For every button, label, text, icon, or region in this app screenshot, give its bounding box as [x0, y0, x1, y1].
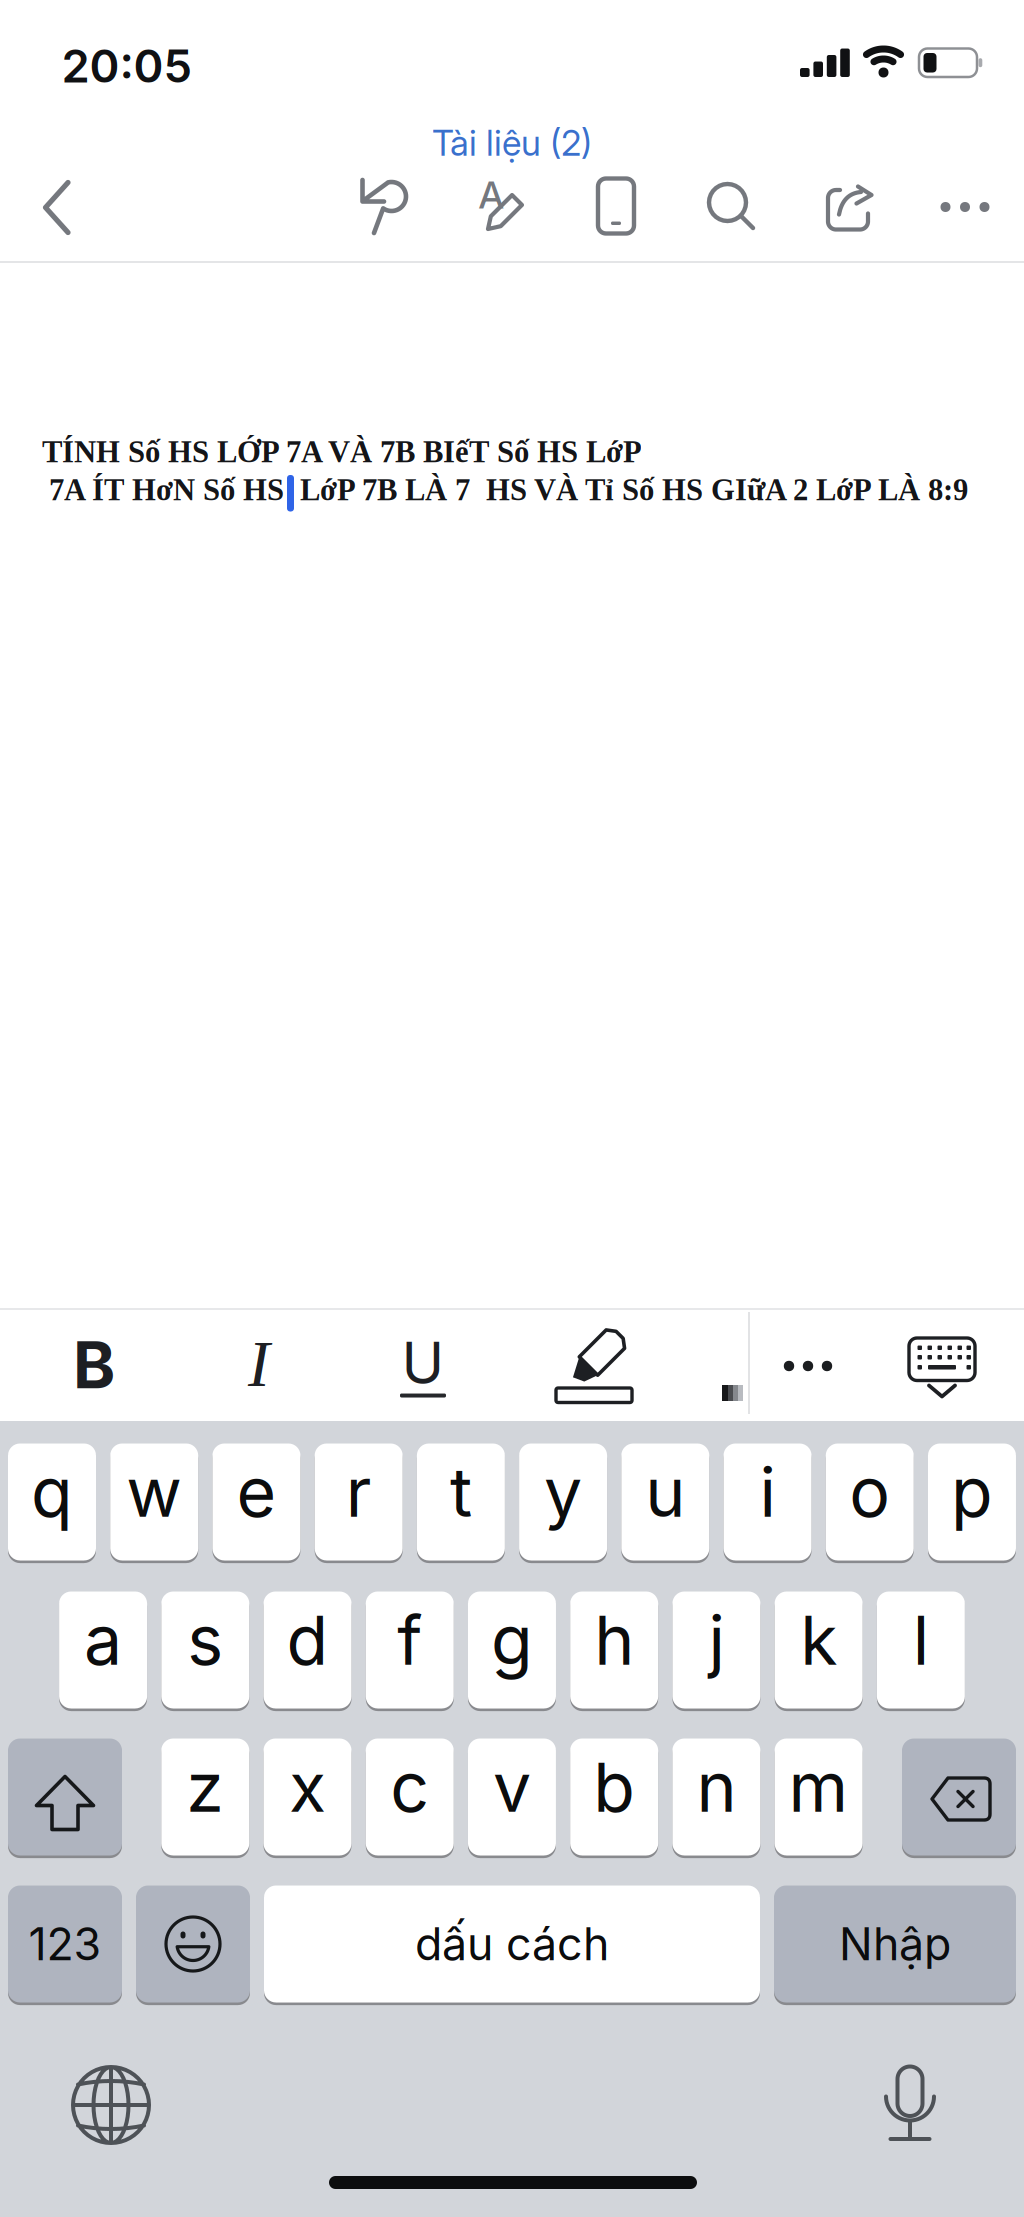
staticText: h	[594, 1599, 634, 1681]
staticText: r	[346, 1451, 372, 1533]
staticText: 123	[28, 1917, 101, 1971]
button[interactable]: a	[59, 1590, 147, 1710]
staticText: w	[126, 1451, 182, 1533]
button[interactable]: Search	[706, 181, 756, 231]
button[interactable]: j	[672, 1590, 760, 1710]
staticText: o	[849, 1451, 890, 1533]
staticText: q	[31, 1451, 73, 1533]
button[interactable]: s	[161, 1590, 249, 1710]
staticText: b	[593, 1746, 635, 1828]
button[interactable]: q	[8, 1442, 96, 1562]
staticText: A	[478, 172, 503, 218]
button[interactable]: w	[110, 1442, 198, 1562]
button[interactable]: g	[468, 1590, 556, 1710]
staticText: p	[951, 1451, 993, 1533]
button[interactable]: p	[928, 1442, 1016, 1562]
button[interactable]: Mobile view	[594, 178, 638, 234]
button[interactable]: Nhập	[774, 1884, 1016, 2004]
button[interactable]: 123	[8, 1884, 122, 2004]
button[interactable]: Undo	[356, 179, 412, 235]
button[interactable]: v	[468, 1737, 556, 1857]
button[interactable]: b	[570, 1737, 658, 1857]
staticText: f	[397, 1599, 422, 1681]
button[interactable]: Delete	[902, 1737, 1016, 1857]
staticText: U	[401, 1328, 444, 1398]
button[interactable]: n	[672, 1737, 760, 1857]
staticText: dấu cách	[415, 1917, 609, 1971]
staticText: m	[789, 1746, 849, 1828]
button[interactable]: d	[263, 1590, 351, 1710]
staticText: TÍNH Số HS LỚP 7A VÀ 7B BIếT Số HS LớP	[42, 435, 642, 469]
staticText: g	[491, 1599, 533, 1681]
staticText: d	[286, 1599, 328, 1681]
button[interactable]: Underline	[383, 1316, 463, 1416]
staticText: u	[645, 1451, 685, 1533]
staticText: k	[800, 1599, 837, 1681]
button[interactable]: c	[366, 1737, 454, 1857]
button[interactable]: l	[877, 1590, 965, 1710]
staticText: 20:05	[61, 39, 192, 93]
staticText: j	[708, 1599, 724, 1681]
button[interactable]: Emoji	[136, 1884, 250, 2004]
button[interactable]: i	[723, 1442, 811, 1562]
staticText: s	[187, 1599, 223, 1681]
button[interactable]: f	[366, 1590, 454, 1710]
button[interactable]: Edit text style	[473, 178, 529, 236]
button[interactable]: More formatting	[782, 1351, 834, 1381]
staticText: a	[84, 1599, 122, 1681]
button[interactable]: Dismiss keyboard	[907, 1337, 977, 1401]
button[interactable]: Back	[35, 179, 79, 235]
staticText: x	[289, 1746, 326, 1828]
button[interactable]: k	[775, 1590, 863, 1710]
button[interactable]: Next keyboard	[69, 2063, 153, 2147]
button[interactable]: m	[775, 1737, 863, 1857]
staticText: y	[544, 1451, 582, 1533]
staticText: e	[236, 1451, 276, 1533]
button[interactable]: e	[212, 1442, 300, 1562]
button[interactable]: z	[161, 1737, 249, 1857]
staticText: c	[390, 1746, 429, 1828]
staticText: l	[913, 1599, 929, 1681]
button[interactable]: h	[570, 1590, 658, 1710]
staticText: z	[186, 1746, 224, 1828]
button[interactable]: t	[417, 1442, 505, 1562]
staticText: B	[73, 1326, 115, 1404]
button[interactable]: Dictate	[880, 2064, 940, 2144]
button[interactable]: Share	[825, 183, 875, 232]
button[interactable]: Highlight	[550, 1316, 634, 1406]
staticText: I	[248, 1328, 270, 1400]
button[interactable]: Shift	[8, 1737, 122, 1857]
staticText: t	[450, 1451, 472, 1533]
button[interactable]: u	[621, 1442, 709, 1562]
button[interactable]: y	[519, 1442, 607, 1562]
button[interactable]: B	[49, 1315, 139, 1415]
staticText: v	[493, 1746, 531, 1828]
button[interactable]: More	[940, 201, 989, 213]
button[interactable]: r	[315, 1442, 403, 1562]
button[interactable]: x	[263, 1737, 351, 1857]
staticText: 7A ÍT HơN Số HS LớP 7B LÀ 7 HS VÀ Tỉ Số …	[49, 473, 968, 507]
staticText: Tài liệu (2)	[432, 122, 592, 164]
button[interactable]: Italic	[219, 1314, 299, 1414]
staticText: i	[759, 1451, 775, 1533]
button[interactable]: o	[826, 1442, 914, 1562]
staticText: Nhập	[839, 1917, 951, 1971]
button[interactable]: dấu cách	[264, 1884, 760, 2004]
staticText: n	[696, 1746, 736, 1828]
